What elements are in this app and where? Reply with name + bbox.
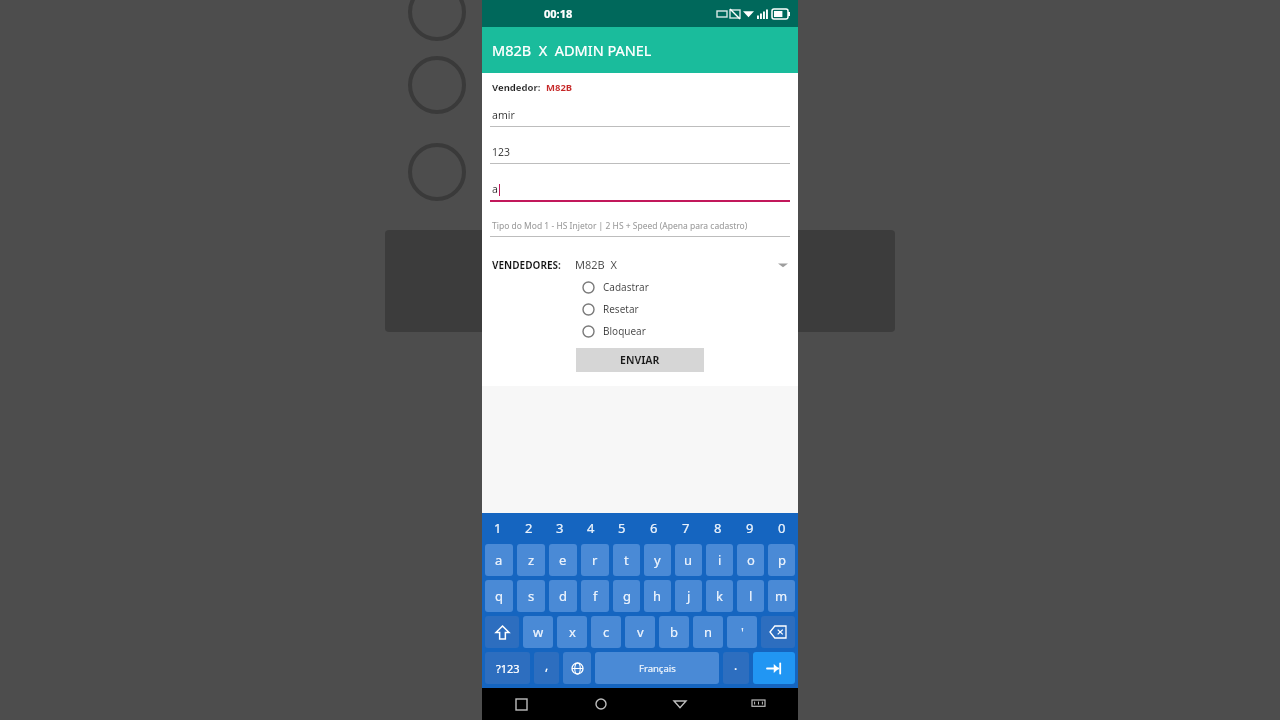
button[interactable]: r (581, 544, 609, 576)
staticText: k (716, 587, 723, 605)
button[interactable]: 3 (544, 513, 575, 542)
button[interactable]: d (549, 580, 577, 612)
button[interactable]: 5 (606, 513, 638, 542)
staticText: 3 (556, 519, 564, 537)
staticText: Français (639, 662, 676, 675)
button[interactable]: t (613, 544, 640, 576)
staticText: 2 (525, 519, 533, 537)
button[interactable]: Back (640, 688, 719, 720)
button[interactable]: ' (727, 616, 757, 648)
button[interactable]: f (581, 580, 609, 612)
staticText: i (718, 551, 722, 569)
button[interactable]: 2 (513, 513, 544, 542)
button[interactable]: l (737, 580, 764, 612)
button[interactable]: q (485, 580, 513, 612)
button[interactable]: VENDEDORES: (482, 253, 798, 276)
staticText: 5 (618, 519, 626, 537)
button[interactable]: Shift (485, 616, 519, 648)
button[interactable]: c (591, 616, 621, 648)
button[interactable]: i (706, 544, 733, 576)
staticText: amir (492, 108, 515, 122)
staticText: y (654, 551, 661, 569)
button[interactable]: v (625, 616, 655, 648)
staticText: . (734, 657, 738, 673)
staticText: r (592, 551, 598, 569)
button[interactable]: o (737, 544, 764, 576)
button[interactable]: Recent apps (482, 688, 561, 720)
button[interactable]: 9 (734, 513, 766, 542)
staticText: z (528, 551, 535, 569)
button[interactable]: a (485, 544, 513, 576)
button[interactable]: Change language (563, 652, 591, 684)
button[interactable]: Backspace (761, 616, 795, 648)
staticText: M82B (546, 81, 573, 94)
staticText: b (670, 623, 678, 641)
staticText: 7 (682, 519, 690, 537)
button[interactable]: n (693, 616, 723, 648)
button[interactable]: Hide keyboard (719, 688, 798, 720)
staticText: Bloquear (603, 324, 646, 338)
button[interactable]: 6 (638, 513, 670, 542)
staticText: j (687, 587, 691, 605)
staticText: a (492, 182, 498, 196)
staticText: Vendedor: (492, 81, 541, 94)
staticText: u (684, 551, 693, 569)
staticText: 8 (714, 519, 722, 537)
button[interactable]: Cadastrar (482, 276, 798, 298)
button[interactable]: Bloquear (482, 320, 798, 342)
button[interactable]: j (675, 580, 702, 612)
staticText: M82B X (575, 257, 617, 272)
staticText: ENVIAR (620, 353, 660, 367)
staticText: n (704, 623, 713, 641)
button[interactable]: k (706, 580, 733, 612)
other: Expand dropdown (778, 260, 788, 270)
button[interactable]: e (549, 544, 577, 576)
button[interactable]: Home (561, 688, 640, 720)
staticText: 9 (746, 519, 754, 537)
staticText: VENDEDORES: (492, 258, 561, 272)
button[interactable]: y (644, 544, 671, 576)
button[interactable]: p (768, 544, 795, 576)
staticText: 1 (494, 519, 502, 537)
staticText: 00:18 (544, 6, 573, 21)
button[interactable]: g (613, 580, 640, 612)
button[interactable]: z (517, 544, 545, 576)
button[interactable]: Tipo do Mod 1 - HS Injetor | 2 HS + Spee… (482, 220, 798, 237)
staticText: l (749, 587, 753, 605)
button[interactable]: , (534, 652, 559, 684)
staticText: Cadastrar (603, 280, 649, 294)
button[interactable]: . (723, 652, 749, 684)
staticText: g (623, 587, 631, 605)
button[interactable]: h (644, 580, 671, 612)
staticText: Resetar (603, 302, 639, 316)
staticText: e (559, 551, 567, 569)
staticText: 0 (778, 519, 786, 537)
staticText: 6 (650, 519, 658, 537)
button[interactable]: x (557, 616, 587, 648)
staticText: a (495, 551, 503, 569)
button[interactable]: 1 (482, 513, 513, 542)
button[interactable]: 4 (575, 513, 606, 542)
staticText: p (778, 551, 786, 569)
staticText: m (775, 587, 788, 605)
staticText: s (528, 587, 535, 605)
button[interactable]: Français (595, 652, 719, 684)
staticText: , (545, 657, 549, 673)
button[interactable]: amir (482, 108, 798, 127)
button[interactable]: m (768, 580, 795, 612)
button[interactable]: b (659, 616, 689, 648)
button[interactable]: u (675, 544, 702, 576)
button[interactable]: a (482, 182, 798, 202)
button[interactable]: 0 (766, 513, 798, 542)
button[interactable]: Enter (753, 652, 795, 684)
button[interactable]: 8 (702, 513, 734, 542)
button[interactable]: ?123 (485, 652, 530, 684)
button[interactable]: ENVIAR (576, 348, 704, 372)
button[interactable]: s (517, 580, 545, 612)
button[interactable]: Resetar (482, 298, 798, 320)
staticText: d (559, 587, 567, 605)
button[interactable]: 7 (670, 513, 702, 542)
button[interactable]: w (523, 616, 553, 648)
button[interactable]: 123 (482, 145, 798, 164)
staticText: h (653, 587, 662, 605)
